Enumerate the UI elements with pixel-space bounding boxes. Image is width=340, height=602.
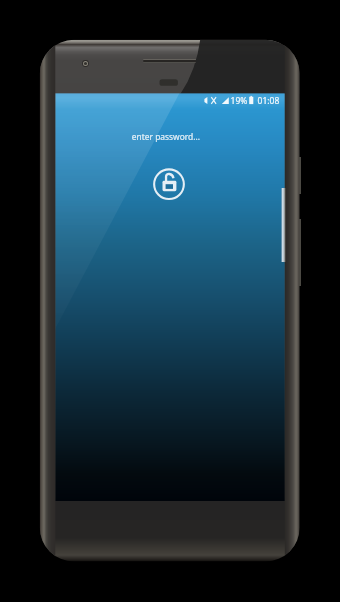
button[interactable]: Phone lock screen <box>0 0 340 602</box>
